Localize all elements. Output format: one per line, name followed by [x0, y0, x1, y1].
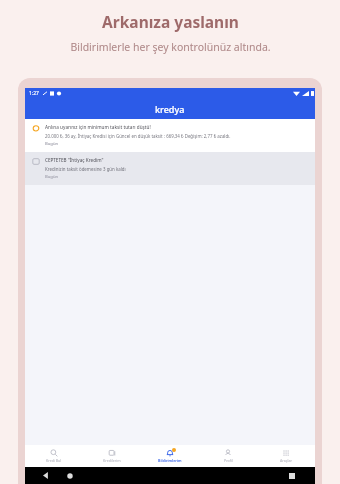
staticText: Profil — [224, 458, 233, 463]
staticText: Bugün — [45, 174, 59, 180]
staticText: Kredinizin taksit ödemesine 3 gün kaldı — [45, 166, 126, 172]
other: Back — [43, 472, 50, 479]
button[interactable]: Araçlar — [257, 445, 315, 467]
other: Home — [67, 473, 73, 479]
staticText: Anlına uyarınız için minimum taksit tuta… — [45, 124, 151, 130]
staticText: Bildirimlerle her şey kontrolünüz altınd… — [70, 40, 271, 54]
staticText: kredya — [155, 103, 185, 115]
button[interactable]: CEPTETEB "İhtiyaç Kredim" — [25, 152, 315, 185]
staticText: Bildirimlerim — [158, 458, 182, 463]
staticText: Arkanıza yaslanın — [102, 11, 239, 32]
staticText: Kredilerim — [103, 458, 121, 463]
button[interactable]: Profil — [199, 445, 257, 467]
staticText: Kredi Bul — [46, 458, 62, 463]
staticText: CEPTETEB "İhtiyaç Kredim" — [45, 157, 104, 163]
staticText: Araçlar — [280, 458, 292, 463]
staticText: Bugün — [45, 141, 59, 147]
button[interactable]: Bildirimlerim — [141, 445, 199, 467]
button[interactable]: Kredilerim — [83, 445, 141, 467]
button[interactable]: Kredi Bul — [25, 445, 83, 467]
staticText: 20.000 ₺, 36 ay, İhtiyaç Kredisi için Gü… — [45, 133, 231, 139]
staticText: 1:27 — [29, 90, 39, 97]
button[interactable]: Anlına uyarınız için minimum taksit tuta… — [25, 119, 315, 152]
